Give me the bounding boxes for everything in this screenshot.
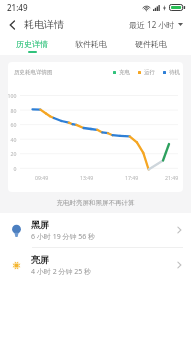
button[interactable]: Back <box>0 15 24 34</box>
staticText: 4 小时 2 分钟 25 秒 <box>31 267 92 277</box>
staticText: 待机 <box>169 69 180 76</box>
staticText: 黑屏 <box>31 219 49 230</box>
button[interactable]: 历史详情 <box>2 34 61 55</box>
staticText: 硬件耗电 <box>135 39 167 49</box>
staticText: 软件耗电 <box>75 39 107 49</box>
staticText: 运行 <box>144 69 155 76</box>
staticText: 21:49 <box>7 2 28 13</box>
button[interactable]: 硬件耗电 <box>121 34 181 55</box>
staticText: 历史耗电详情图 <box>14 69 53 76</box>
button[interactable]: 软件耗电 <box>61 34 121 55</box>
staticText: 6 小时 19 分钟 56 秒 <box>31 232 96 242</box>
button[interactable]: 亮屏 <box>0 248 191 282</box>
button[interactable]: 最近 12 小时 <box>123 15 191 34</box>
button[interactable]: 黑屏 <box>0 213 191 247</box>
staticText: 充电 <box>119 69 130 76</box>
staticText: 耗电详情 <box>24 18 64 31</box>
staticText: 亮屏 <box>31 254 49 265</box>
staticText: 历史详情 <box>16 39 48 49</box>
staticText: 最近 12 小时 <box>129 19 175 30</box>
staticText: 充电时亮屏和黑屏不再计算 <box>0 199 191 207</box>
